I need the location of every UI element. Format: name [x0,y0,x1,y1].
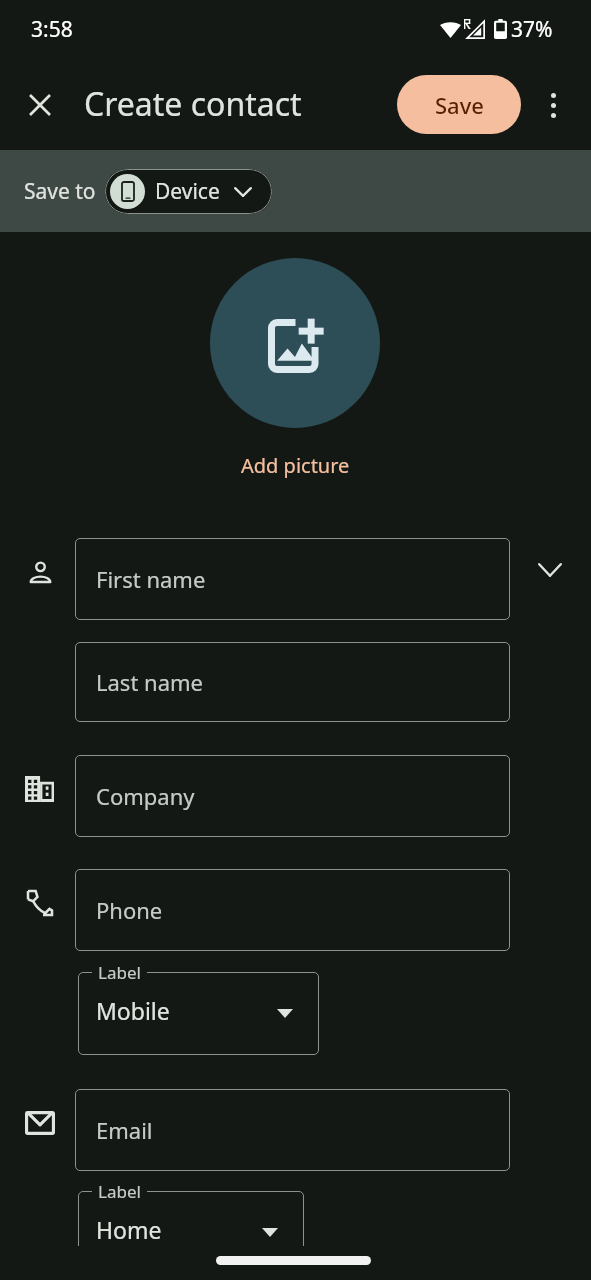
button[interactable]: More options [529,81,577,129]
button[interactable]: Expand name fields [526,546,574,594]
staticText: Save to [24,177,96,206]
staticText: Label [98,961,141,984]
staticText: First name [96,564,206,594]
staticText: Save [435,90,484,120]
staticText: 37% [511,15,553,44]
button[interactable]: Add picture [225,448,365,482]
button[interactable]: Phone [75,869,510,951]
button[interactable]: Mobile [78,972,319,1055]
staticText: Email [96,1115,153,1145]
button[interactable]: Email [75,1089,510,1171]
staticText: Device [155,177,220,206]
button[interactable]: Add picture [210,258,380,428]
staticText: 3:58 [31,15,73,44]
staticText: Mobile [96,995,170,1026]
button[interactable]: Company [75,755,510,837]
staticText: Last name [96,667,203,697]
button[interactable]: Save [397,75,521,134]
button[interactable]: Last name [75,642,510,722]
button[interactable]: Home [78,1191,304,1246]
staticText: Add picture [241,452,350,479]
staticText: Label [98,1180,141,1203]
staticText: Home [96,1214,162,1245]
button[interactable]: First name [75,538,510,620]
staticText: Phone [96,895,163,925]
staticText: Company [96,781,195,811]
button[interactable]: Device [105,169,272,214]
staticText: Create contact [84,82,302,126]
button[interactable]: Close [16,81,64,129]
